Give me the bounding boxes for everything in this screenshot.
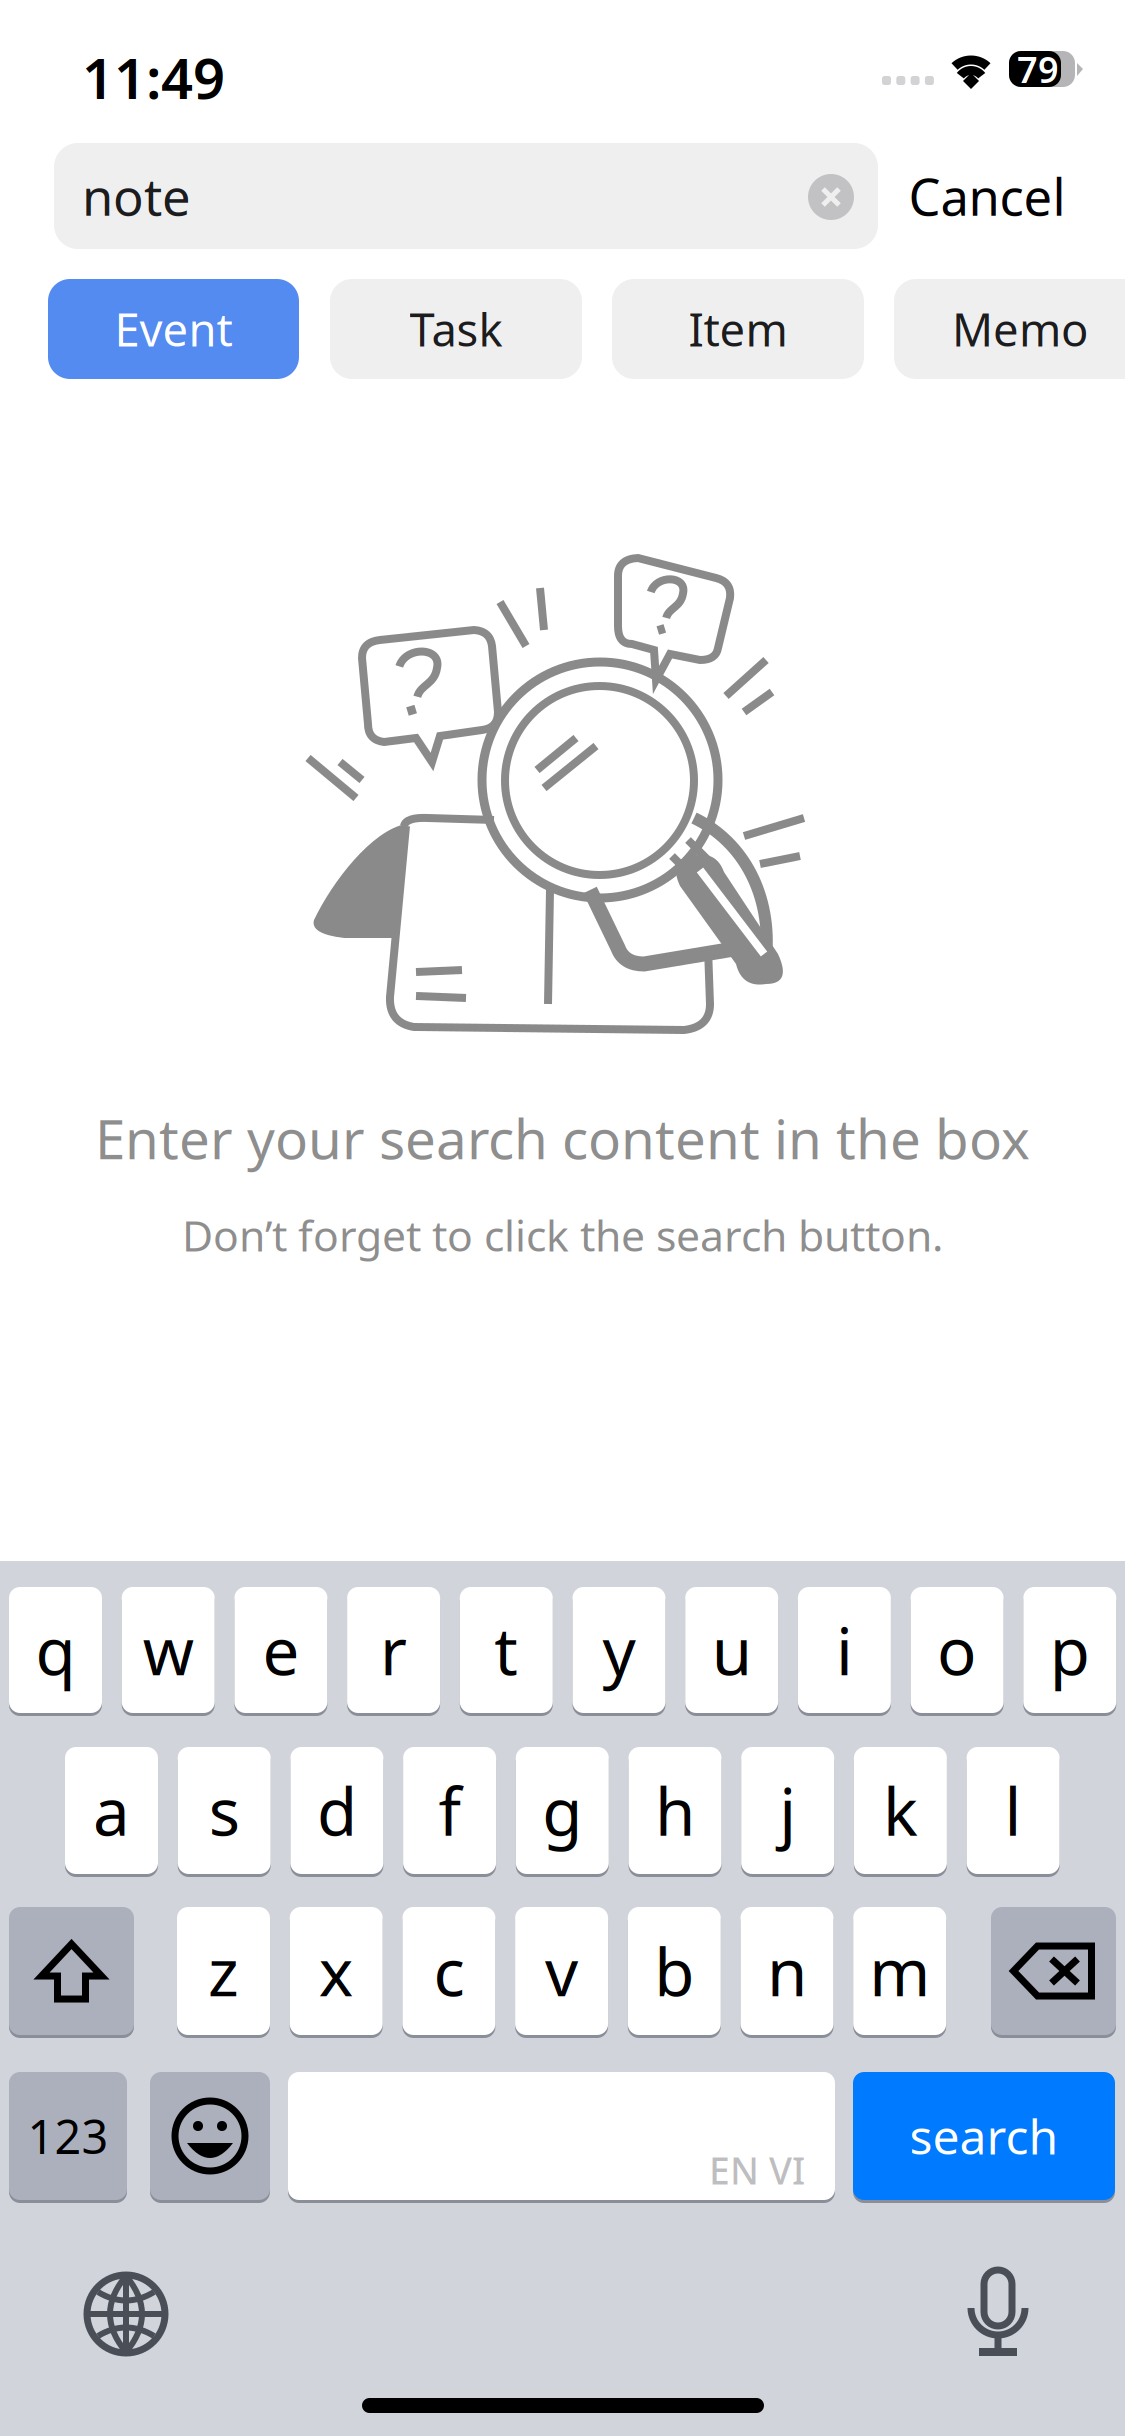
staticText: r — [380, 1607, 407, 1693]
button[interactable]: Delete — [991, 1907, 1116, 2038]
button[interactable]: h — [628, 1747, 721, 1877]
button[interactable]: z — [177, 1907, 270, 2038]
staticText: o — [937, 1607, 977, 1693]
button[interactable]: m — [853, 1907, 946, 2038]
button[interactable]: n — [740, 1907, 833, 2038]
staticText: w — [143, 1607, 194, 1693]
button[interactable]: Event — [48, 279, 299, 379]
button[interactable]: t — [460, 1587, 553, 1716]
staticText: Event — [114, 299, 232, 359]
button[interactable]: i — [798, 1587, 891, 1716]
button[interactable]: w — [122, 1587, 215, 1716]
button[interactable]: f — [403, 1747, 496, 1877]
staticText: j — [779, 1767, 796, 1854]
staticText: g — [542, 1767, 582, 1854]
button[interactable]: c — [402, 1907, 495, 2038]
staticText: n — [767, 1928, 807, 2014]
staticText: x — [319, 1928, 354, 2014]
staticText: s — [209, 1767, 240, 1854]
staticText: f — [439, 1767, 461, 1854]
button[interactable]: v — [515, 1907, 608, 2038]
staticText: a — [93, 1767, 130, 1854]
button[interactable]: Shift — [9, 1907, 134, 2038]
staticText: z — [208, 1928, 239, 2014]
button[interactable]: Item — [612, 279, 864, 379]
button[interactable]: a — [65, 1747, 158, 1877]
staticText: k — [883, 1767, 918, 1854]
button[interactable]: Cancel — [892, 143, 1082, 249]
button[interactable]: x — [290, 1907, 383, 2038]
button[interactable]: Task — [330, 279, 582, 379]
staticText: 123 — [27, 2105, 108, 2167]
staticText: e — [262, 1607, 299, 1693]
button[interactable]: g — [516, 1747, 609, 1877]
button[interactable]: r — [347, 1587, 440, 1716]
staticText: u — [712, 1607, 752, 1693]
staticText: q — [35, 1607, 75, 1693]
button[interactable]: o — [911, 1587, 1004, 1716]
staticText: d — [317, 1767, 357, 1854]
button[interactable]: q — [9, 1587, 102, 1716]
staticText: Don’t forget to click the search button. — [182, 1207, 943, 1263]
button[interactable]: Search field — [54, 143, 878, 249]
button[interactable]: search — [853, 2072, 1115, 2203]
button[interactable]: Memo — [894, 279, 1125, 379]
staticText: Cancel — [908, 162, 1065, 230]
staticText: h — [655, 1767, 695, 1854]
staticText: t — [494, 1607, 518, 1693]
staticText: Task — [409, 299, 502, 359]
button[interactable]: u — [685, 1587, 778, 1716]
button[interactable]: b — [628, 1907, 721, 2038]
staticText: l — [1005, 1767, 1022, 1854]
staticText: i — [836, 1607, 853, 1693]
button[interactable]: Space — [288, 2072, 835, 2203]
button[interactable]: p — [1023, 1587, 1116, 1716]
staticText: 11:49 — [82, 40, 225, 114]
button[interactable]: s — [178, 1747, 271, 1877]
staticText: v — [545, 1928, 578, 2014]
button[interactable]: 123 — [9, 2072, 127, 2203]
button[interactable]: d — [290, 1747, 383, 1877]
staticText: Item — [688, 299, 787, 359]
staticText: EN VI — [709, 2145, 805, 2195]
staticText: Enter your search content in the box — [95, 1102, 1030, 1174]
button[interactable]: j — [741, 1747, 834, 1877]
button[interactable]: Emoji — [150, 2072, 270, 2203]
staticText: search — [909, 2104, 1058, 2168]
staticText: c — [433, 1928, 464, 2014]
staticText: note — [82, 162, 191, 230]
staticText: 79 — [1017, 45, 1059, 93]
staticText: Memo — [952, 299, 1088, 359]
button[interactable]: y — [572, 1587, 665, 1716]
staticText: b — [654, 1928, 694, 2014]
button[interactable]: l — [967, 1747, 1060, 1877]
staticText: m — [869, 1928, 930, 2014]
button[interactable]: Switch keyboard — [87, 2275, 165, 2353]
staticText: y — [602, 1607, 635, 1693]
button[interactable]: Dictate — [970, 2270, 1026, 2356]
button[interactable]: e — [234, 1587, 327, 1716]
staticText: p — [1050, 1607, 1090, 1693]
button[interactable]: k — [854, 1747, 947, 1877]
